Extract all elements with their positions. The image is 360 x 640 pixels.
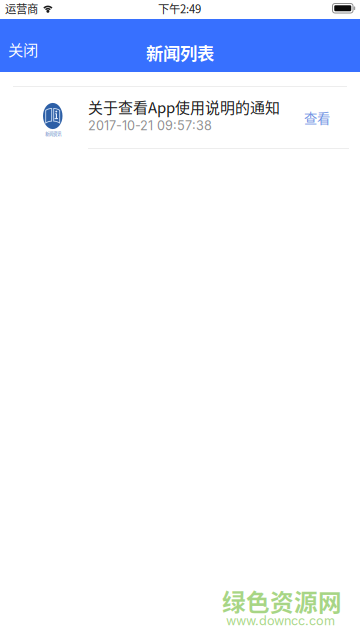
button[interactable]: 关闭 [0, 31, 56, 67]
staticText: 新闻资讯 [45, 131, 61, 137]
staticText: 查看 [304, 108, 330, 127]
button[interactable]: 查看 [298, 102, 336, 133]
staticText: 2017-10-21 09:57:38 [88, 118, 212, 133]
staticText: 绿色资源网 [222, 584, 342, 618]
button[interactable]: 关于查看App使用说明的通知 [0, 94, 360, 148]
staticText: 关于查看App使用说明的通知 [88, 96, 280, 118]
staticText: 运营商 [5, 0, 38, 16]
staticText: 关闭 [8, 38, 38, 60]
staticText: 下午2:49 [158, 0, 201, 16]
staticText: 新闻列表 [146, 40, 214, 65]
staticText: www.downcc.com [226, 613, 335, 628]
